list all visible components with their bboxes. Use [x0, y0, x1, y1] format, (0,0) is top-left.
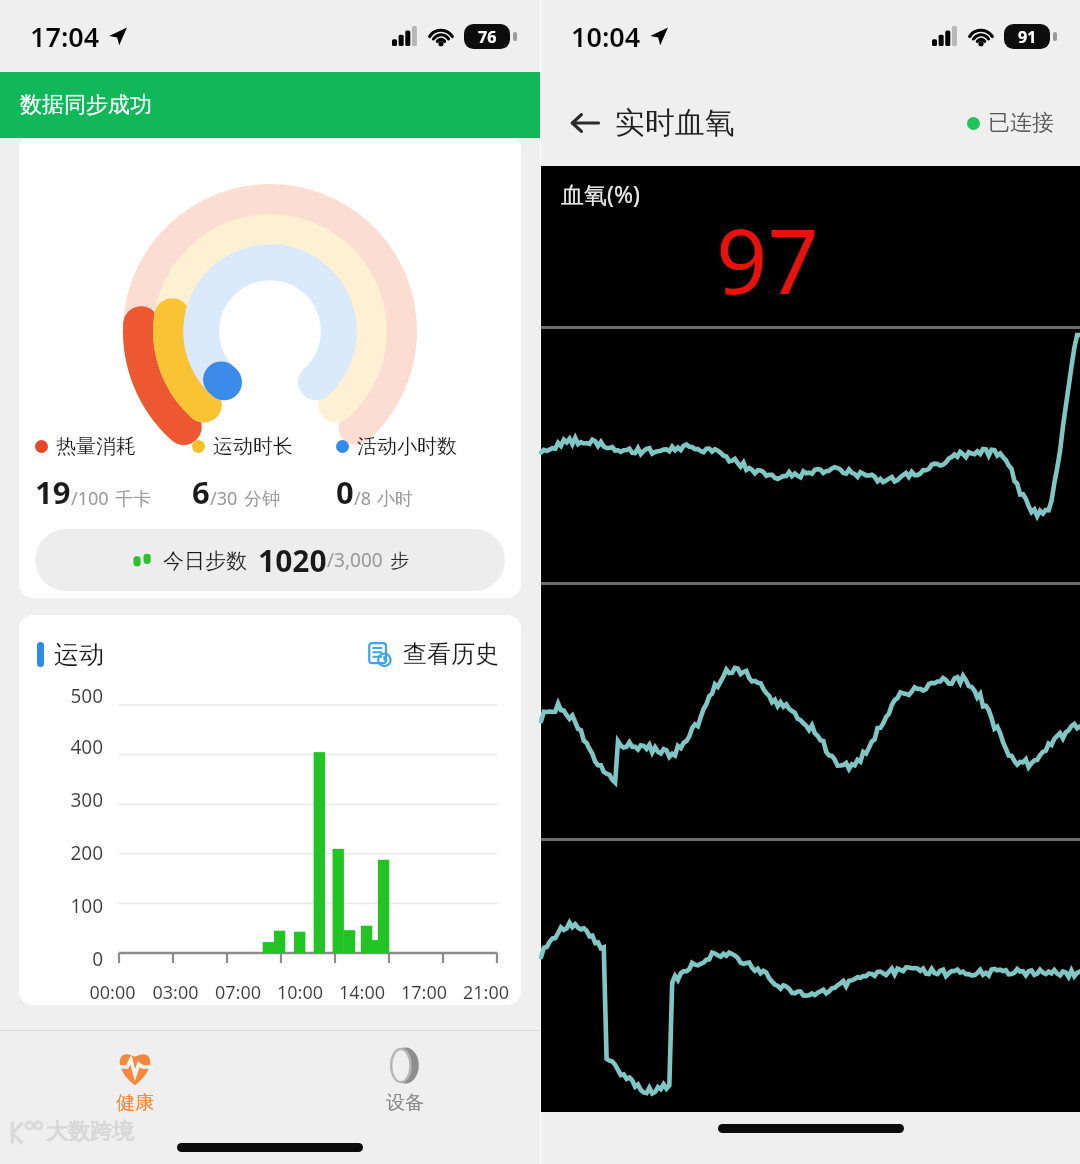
staticText: 血氧(%): [561, 178, 640, 209]
button[interactable]: 已连接: [963, 105, 1058, 141]
staticText: 17:00: [393, 980, 455, 1005]
staticText: 健康: [116, 1091, 154, 1115]
staticText: 19: [35, 471, 71, 513]
staticText: 10:00: [269, 980, 331, 1005]
staticText: 活动小时数: [357, 434, 457, 459]
staticText: 6: [192, 471, 210, 513]
staticText: 97: [716, 198, 819, 321]
staticText: 设备: [386, 1091, 424, 1115]
staticText: 实时血氧: [615, 104, 735, 142]
button[interactable]: 热量消耗: [19, 135, 521, 598]
staticText: 已连接: [988, 109, 1054, 137]
staticText: 分钟: [244, 488, 280, 511]
staticText: 00:00: [81, 980, 144, 1005]
staticText: 运动时长: [213, 434, 293, 459]
button[interactable]: 查看历史: [362, 635, 503, 673]
staticText: 400: [45, 734, 103, 760]
button[interactable]: 设备: [270, 1039, 540, 1119]
staticText: 17:04: [30, 18, 100, 55]
staticText: 91: [1018, 26, 1037, 48]
staticText: 200: [45, 840, 103, 866]
staticText: /30: [210, 486, 238, 511]
staticText: 07:00: [207, 980, 269, 1005]
staticText: 21:00: [455, 980, 517, 1005]
staticText: 1020: [258, 540, 327, 581]
staticText: 300: [45, 787, 103, 813]
staticText: 大数跨境: [46, 1118, 134, 1146]
staticText: /100: [71, 486, 109, 511]
staticText: 03:00: [144, 980, 207, 1005]
staticText: 0: [45, 946, 103, 972]
other: 查看历史: [366, 641, 393, 668]
staticText: 76: [478, 26, 497, 48]
staticText: 步: [390, 549, 409, 573]
staticText: 14:00: [331, 980, 393, 1005]
staticText: 热量消耗: [56, 434, 136, 459]
button[interactable]: 健康: [0, 1039, 270, 1119]
staticText: /8: [354, 486, 371, 511]
staticText: 手环: [22, 99, 56, 120]
staticText: /3,000: [327, 547, 383, 573]
staticText: 数据同步成功: [20, 91, 152, 119]
staticText: 0: [336, 471, 354, 513]
staticText: 小时: [377, 488, 413, 511]
button[interactable]: 返回: [563, 101, 607, 145]
staticText: 10:04: [571, 18, 641, 55]
button[interactable]: 今日步数: [35, 529, 505, 591]
staticText: 运动: [54, 639, 104, 670]
staticText: 100: [45, 893, 103, 919]
staticText: 今日步数: [163, 548, 247, 574]
staticText: 千卡: [115, 488, 151, 511]
staticText: 查看历史: [403, 639, 499, 669]
staticText: 500: [45, 683, 103, 709]
